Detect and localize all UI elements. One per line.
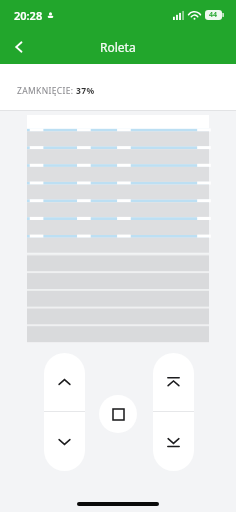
staticText: ZAMKNIĘCIE: 37% [17,85,95,97]
staticText: Roleta [100,39,136,55]
button[interactable]: Move down [44,412,85,471]
button[interactable]: Stop [99,395,137,433]
staticText: 44 [209,10,218,20]
button[interactable]: Close fully [153,412,194,471]
button[interactable]: Move up [44,353,85,411]
staticText: 20:28 [14,8,43,23]
button[interactable]: Back [4,32,34,62]
button[interactable]: Open fully [153,353,194,411]
